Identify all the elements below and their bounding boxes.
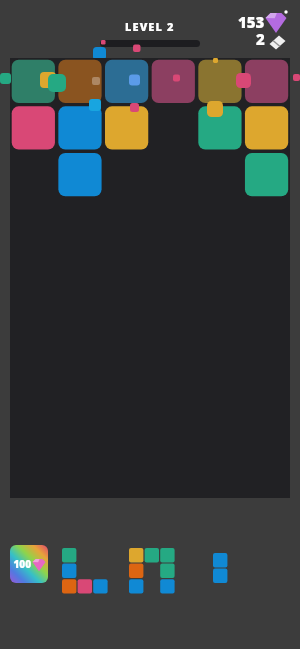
button[interactable]: Gems: 153	[238, 10, 296, 32]
button[interactable]: Block piece 3	[211, 551, 231, 585]
button[interactable]: Block piece 1	[60, 546, 110, 596]
button[interactable]: Buy extra piece for 100 gems	[10, 545, 48, 583]
button[interactable]: Erasers: 2	[246, 32, 296, 54]
button[interactable]: Block piece 2	[127, 546, 179, 596]
